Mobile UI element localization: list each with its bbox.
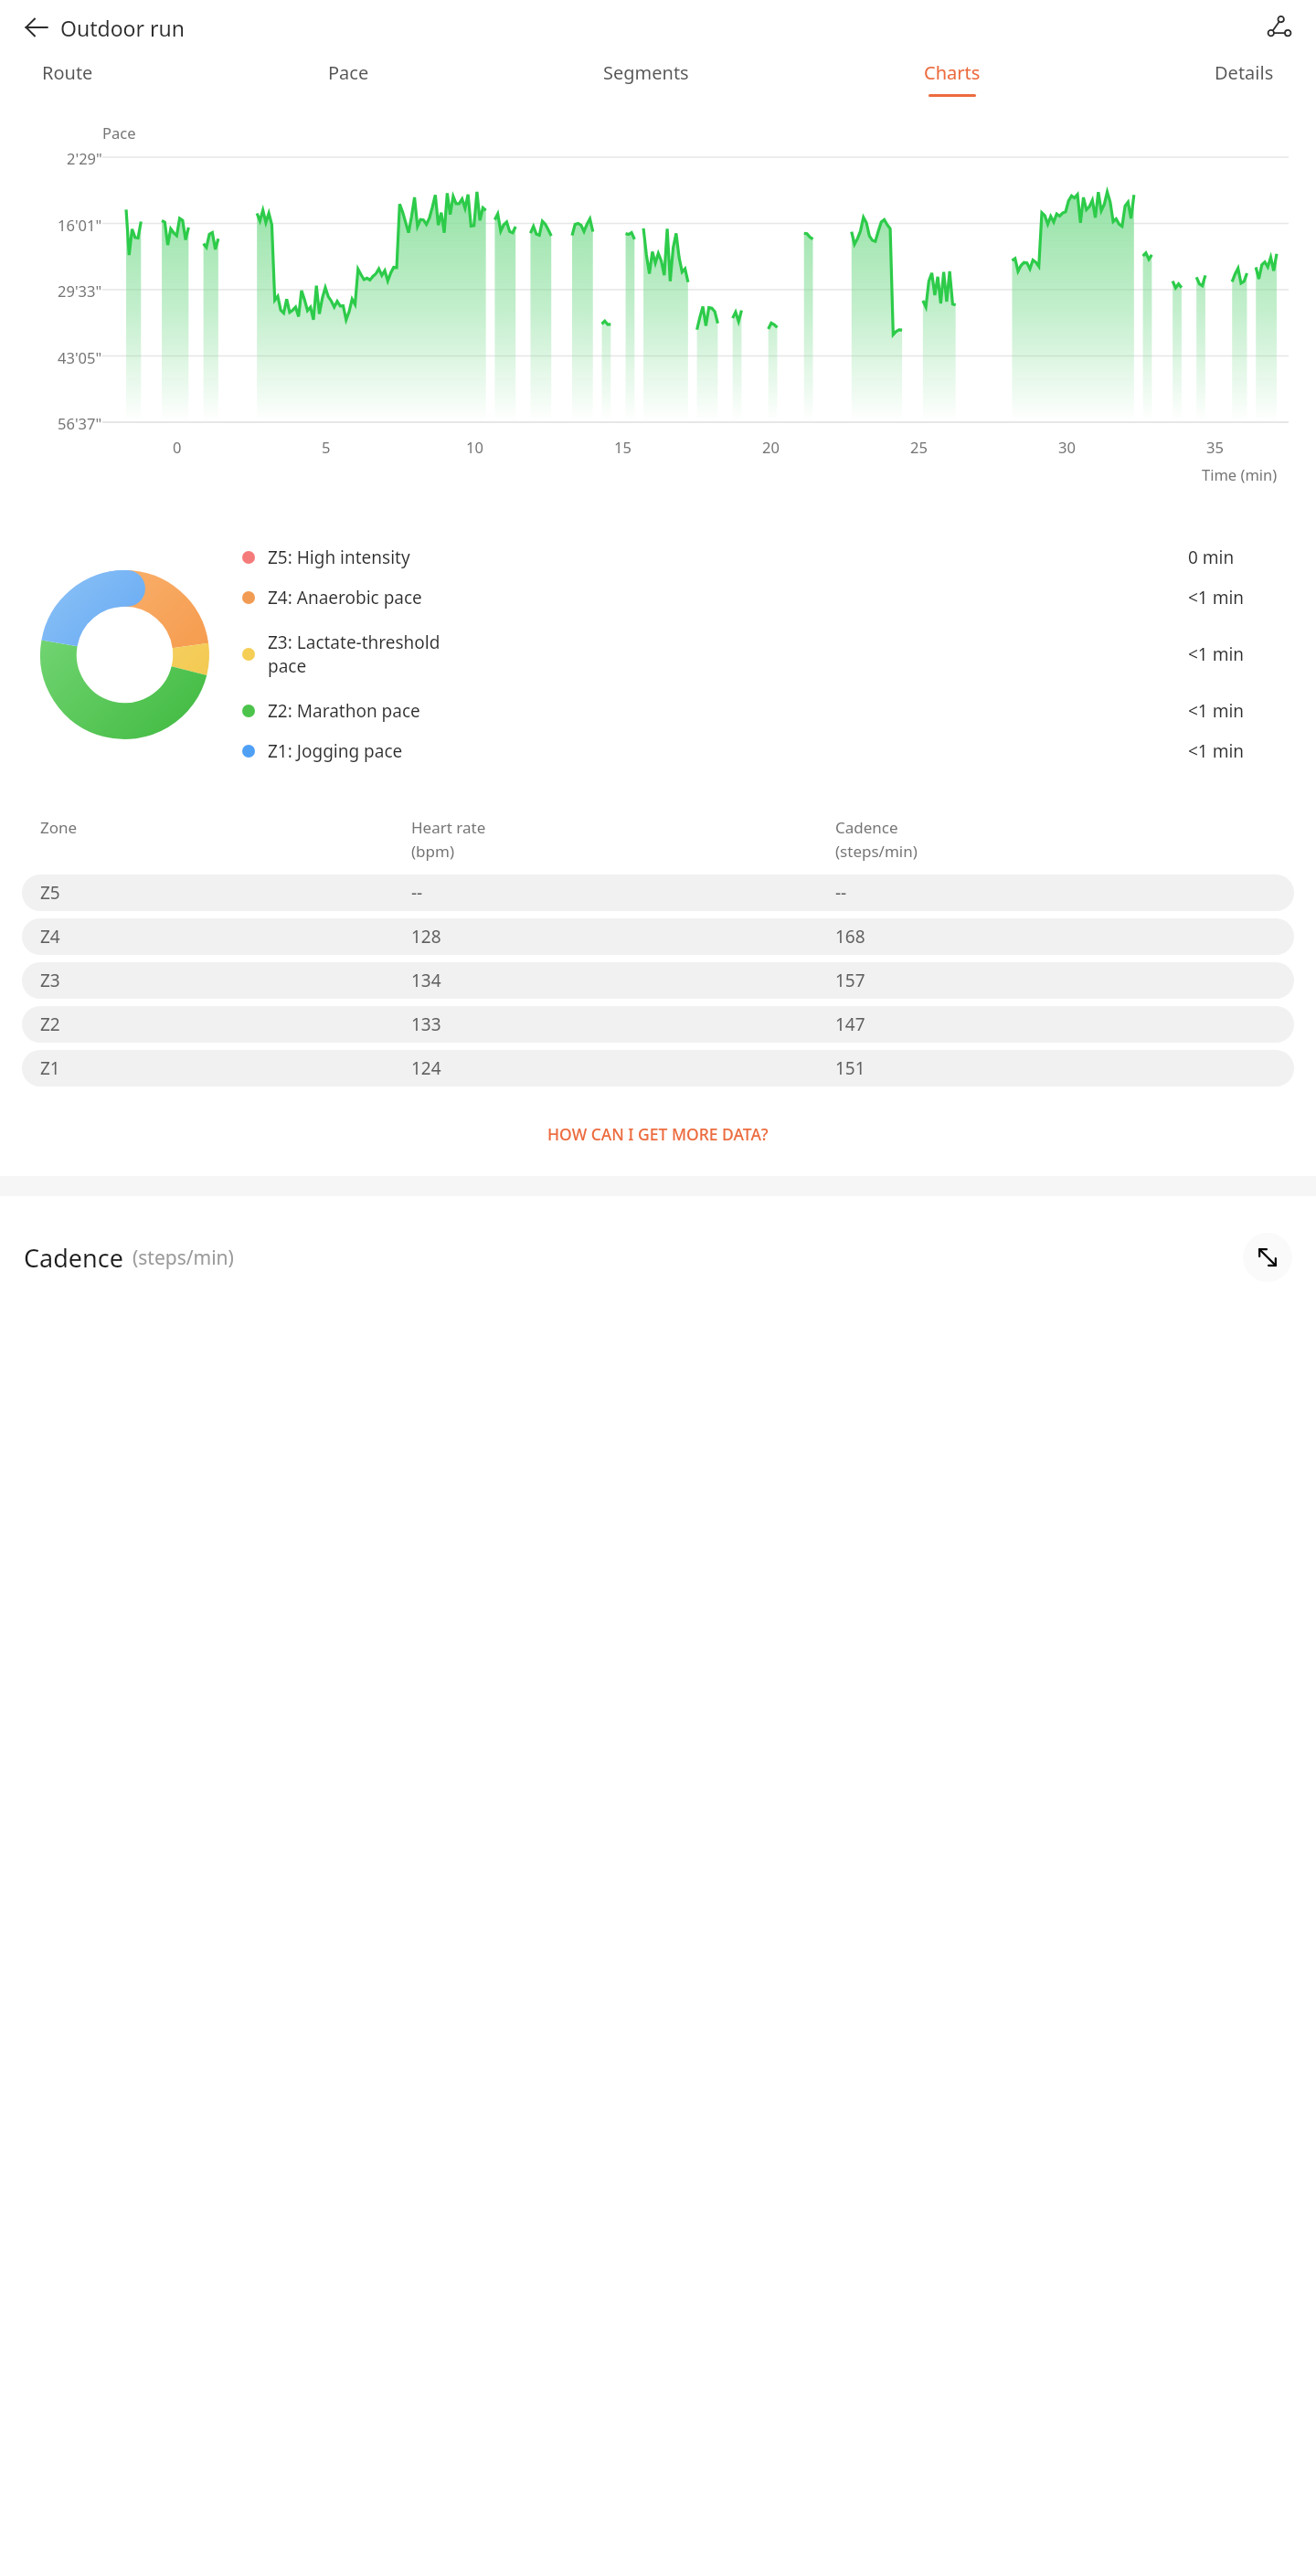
staticText: Segments bbox=[603, 60, 689, 85]
staticText: 29'33" bbox=[58, 281, 102, 299]
staticText: Z4: Anaerobic pace bbox=[268, 586, 1181, 610]
staticText: Z4 bbox=[40, 925, 411, 949]
button[interactable]: Z2 bbox=[22, 1006, 1294, 1043]
staticText: 56'37" bbox=[58, 413, 102, 431]
staticText: 157 bbox=[835, 969, 1294, 992]
button[interactable]: Z5 bbox=[22, 875, 1294, 911]
staticText: 20 bbox=[762, 437, 780, 457]
staticText: <1 min bbox=[1188, 699, 1245, 723]
staticText: 16'01" bbox=[58, 215, 102, 233]
button[interactable]: Z1 bbox=[22, 1050, 1294, 1087]
button[interactable]: Share bbox=[1256, 4, 1303, 51]
staticText: 168 bbox=[835, 925, 1294, 949]
button[interactable]: HOW CAN I GET MORE DATA? bbox=[0, 1112, 1316, 1156]
button[interactable]: Z4: Anaerobic pace bbox=[242, 578, 1283, 618]
staticText: Z3 bbox=[40, 969, 411, 992]
button[interactable]: Route bbox=[38, 55, 97, 102]
staticText: 128 bbox=[411, 925, 835, 949]
staticText: HOW CAN I GET MORE DATA? bbox=[547, 1123, 769, 1145]
staticText: 15 bbox=[614, 437, 631, 457]
button[interactable]: Z1: Jogging pace bbox=[242, 731, 1283, 771]
staticText: Z3: Lactate-threshold pace bbox=[268, 631, 1181, 678]
staticText: 147 bbox=[835, 1012, 1294, 1036]
staticText: <1 min bbox=[1188, 586, 1245, 610]
staticText: Z2 bbox=[40, 1012, 411, 1036]
staticText: 0 bbox=[173, 437, 182, 457]
button[interactable]: Details bbox=[1211, 55, 1278, 102]
staticText: 133 bbox=[411, 1012, 835, 1036]
staticText: Z2: Marathon pace bbox=[268, 699, 1181, 723]
staticText: 124 bbox=[411, 1056, 835, 1080]
staticText: <1 min bbox=[1188, 739, 1245, 763]
staticText: Details bbox=[1215, 60, 1274, 85]
button[interactable]: Pace bbox=[324, 55, 373, 102]
button[interactable]: Back bbox=[13, 4, 60, 51]
staticText: 151 bbox=[835, 1056, 1294, 1080]
staticText: (steps/min) bbox=[133, 1245, 234, 1271]
staticText: 0 min bbox=[1188, 546, 1235, 569]
staticText: Z1 bbox=[40, 1056, 411, 1080]
staticText: Pace bbox=[328, 60, 369, 85]
staticText: Z1: Jogging pace bbox=[268, 739, 1181, 763]
staticText: -- bbox=[411, 881, 835, 905]
button[interactable]: Segments bbox=[600, 55, 693, 102]
staticText: 43'05" bbox=[58, 347, 102, 366]
staticText: Heart rate (bpm) bbox=[411, 817, 835, 862]
staticText: Cadence (steps/min) bbox=[835, 817, 1294, 862]
staticText: Outdoor run bbox=[60, 14, 185, 42]
staticText: Z5 bbox=[40, 881, 411, 905]
staticText: 35 bbox=[1206, 437, 1224, 457]
staticText: Z5: High intensity bbox=[268, 546, 1181, 569]
button[interactable]: Z3 bbox=[22, 962, 1294, 999]
staticText: -- bbox=[835, 881, 1294, 905]
staticText: 5 bbox=[322, 437, 331, 457]
staticText: 2'29" bbox=[67, 148, 102, 166]
staticText: 10 bbox=[466, 437, 483, 457]
button[interactable]: Charts bbox=[920, 55, 984, 102]
staticText: 25 bbox=[910, 437, 928, 457]
button[interactable]: Z2: Marathon pace bbox=[242, 691, 1283, 731]
staticText: 134 bbox=[411, 969, 835, 992]
staticText: Cadence bbox=[24, 1241, 123, 1275]
button[interactable]: Z5: High intensity bbox=[242, 537, 1283, 578]
staticText: Pace bbox=[102, 122, 136, 143]
staticText: 30 bbox=[1058, 437, 1076, 457]
staticText: Zone bbox=[40, 817, 411, 838]
button[interactable]: Z3: Lactate-threshold pace bbox=[242, 618, 1283, 691]
button[interactable]: Z4 bbox=[22, 918, 1294, 955]
button[interactable]: Expand chart bbox=[1243, 1233, 1292, 1282]
staticText: Charts bbox=[924, 60, 981, 85]
staticText: <1 min bbox=[1188, 642, 1245, 666]
staticText: Time (min) bbox=[1202, 464, 1278, 484]
staticText: Route bbox=[42, 60, 93, 85]
